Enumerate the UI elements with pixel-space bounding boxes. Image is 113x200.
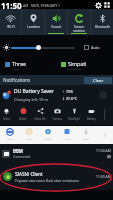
staticText: DU Battery Saver (14, 88, 54, 95)
staticText: SIASNi Client (15, 171, 43, 177)
staticText: MON, FEBRUARY 1 (31, 4, 60, 8)
button[interactable]: Simpati (61, 56, 111, 74)
staticText: Share file (34, 117, 46, 121)
staticText: Clear (93, 78, 104, 84)
staticText: Flashlight (68, 117, 80, 121)
button[interactable]: Auto (84, 45, 100, 50)
button[interactable]: Mail (20, 126, 38, 144)
button[interactable]: Flashlight (65, 104, 83, 125)
staticText: Sound (51, 25, 61, 29)
staticText: Bluetooth (95, 25, 110, 29)
button[interactable]: BBM (0, 144, 113, 163)
button[interactable]: Notes (58, 126, 76, 144)
staticText: 75% (66, 89, 74, 94)
staticText: Notes (64, 137, 71, 140)
staticText: Auto (91, 45, 100, 50)
staticText: 37.6°C (66, 96, 77, 101)
staticText: Pegawai atas nama Budi akan melaksana (15, 178, 79, 182)
button[interactable]: Settings (94, 1, 102, 9)
button[interactable]: Three (5, 56, 55, 74)
staticText: Connected (13, 154, 31, 159)
staticText: Three (12, 60, 26, 67)
button[interactable]: More (98, 126, 112, 144)
staticText: THREE (12, 67, 20, 70)
button[interactable]: Phone (39, 126, 57, 144)
staticText: Tools (83, 137, 89, 140)
button[interactable]: Screen rotation (68, 9, 90, 35)
staticText: Camera (52, 117, 62, 121)
staticText: Battery (87, 117, 96, 121)
button[interactable]: Quick toggles (103, 1, 111, 9)
staticText: Mail (27, 137, 32, 140)
staticText: Simpati (68, 60, 87, 67)
staticText: Silent (3, 117, 10, 121)
button[interactable]: DU Battery Saver (0, 85, 113, 104)
button[interactable]: Brightness (11, 43, 75, 52)
button[interactable]: Battery (82, 104, 100, 125)
button[interactable]: Options (99, 91, 107, 99)
button[interactable]: Location (22, 9, 44, 35)
staticText: BBM (13, 148, 23, 154)
button[interactable]: Share file (31, 104, 49, 125)
staticText: Charging left: 59 m (14, 97, 49, 102)
staticText: Notifications (3, 77, 31, 83)
button[interactable]: Boost (14, 104, 32, 125)
staticText: AM (23, 4, 29, 8)
staticText: Skype (7, 137, 14, 140)
staticText: Phone (44, 137, 52, 140)
button[interactable]: Skype (1, 126, 19, 144)
button[interactable]: Bluetooth (91, 9, 113, 35)
button[interactable]: Silent (0, 104, 15, 125)
button[interactable]: Tools (77, 126, 95, 144)
staticText: 11:34 AM (96, 148, 111, 153)
staticText: Boost (19, 117, 27, 121)
button[interactable]: Wi-Fi (0, 9, 21, 35)
staticText: TELKOMSEL (68, 67, 82, 70)
staticText: Location (27, 25, 40, 29)
button[interactable]: SIASNi Client (0, 163, 113, 190)
staticText: Wi-Fi (7, 25, 15, 29)
button[interactable]: Sound (45, 9, 67, 35)
button[interactable]: Clear (84, 77, 112, 84)
staticText: 11:50 (1, 0, 22, 9)
staticText: Screen rotation (73, 25, 85, 33)
staticText: 11:03 AM (96, 174, 111, 179)
button[interactable]: Camera (48, 104, 66, 125)
